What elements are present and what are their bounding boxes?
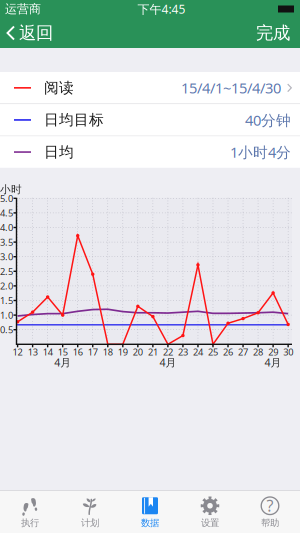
staticText: 2.5 bbox=[0, 265, 13, 277]
staticText: 1.0 bbox=[0, 309, 13, 321]
staticText: 4.5 bbox=[0, 207, 13, 219]
staticText: 17 bbox=[88, 346, 98, 358]
staticText: 日均目标 bbox=[44, 111, 104, 129]
button[interactable]: 返回 bbox=[0, 18, 53, 48]
staticText: 25 bbox=[208, 346, 218, 358]
staticText: 1小时4分 bbox=[230, 142, 291, 162]
button[interactable]: 完成 bbox=[256, 18, 300, 48]
staticText: 4.0 bbox=[0, 221, 13, 234]
button[interactable]: 执行 bbox=[0, 491, 60, 533]
staticText: 下午4:45 bbox=[137, 1, 185, 17]
button[interactable]: 阅读 bbox=[0, 72, 300, 104]
staticText: 0.5 bbox=[0, 323, 13, 336]
staticText: 30 bbox=[283, 346, 293, 358]
button[interactable]: ? bbox=[240, 491, 300, 533]
staticText: 小时 bbox=[0, 183, 22, 196]
staticText: 日均 bbox=[44, 143, 74, 161]
staticText: 40分钟 bbox=[245, 110, 291, 130]
staticText: 完成 bbox=[256, 22, 290, 44]
staticText: 3.0 bbox=[0, 250, 13, 263]
staticText: ? bbox=[266, 495, 273, 516]
staticText: 15/4/1~15/4/30 bbox=[181, 78, 281, 98]
button[interactable]: 数据 bbox=[120, 491, 180, 533]
button[interactable]: 日均 bbox=[0, 136, 300, 168]
staticText: 14 bbox=[43, 346, 53, 358]
staticText: 2.0 bbox=[0, 280, 13, 292]
staticText: 5.0 bbox=[0, 192, 13, 204]
staticText: 3.5 bbox=[0, 236, 13, 248]
staticText: 24 bbox=[193, 346, 203, 358]
staticText: 设置 bbox=[201, 517, 219, 529]
staticText: 返回 bbox=[19, 22, 53, 44]
staticText: 15 bbox=[58, 346, 68, 358]
button[interactable]: 计划 bbox=[60, 491, 120, 533]
staticText: 4月 bbox=[54, 355, 71, 369]
staticText: 阅读 bbox=[44, 79, 74, 97]
staticText: 19 bbox=[118, 346, 128, 358]
staticText: 29 bbox=[268, 346, 278, 358]
staticText: 21 bbox=[148, 346, 158, 358]
staticText: 13 bbox=[28, 346, 38, 358]
staticText: 18 bbox=[103, 346, 113, 358]
staticText: 26 bbox=[223, 346, 233, 358]
staticText: 4月 bbox=[265, 355, 282, 369]
staticText: 执行 bbox=[21, 517, 39, 529]
staticText: 帮助 bbox=[261, 517, 279, 529]
staticText: 22 bbox=[163, 346, 173, 358]
button[interactable]: 设置 bbox=[180, 491, 240, 533]
staticText: 1.5 bbox=[0, 294, 13, 307]
staticText: 计划 bbox=[81, 517, 99, 529]
staticText: 12 bbox=[13, 346, 23, 358]
staticText: 23 bbox=[178, 346, 188, 358]
staticText: 4月 bbox=[159, 355, 176, 369]
staticText: 运营商 bbox=[5, 2, 45, 16]
staticText: 16 bbox=[73, 346, 83, 358]
staticText: 27 bbox=[238, 346, 248, 358]
button[interactable]: 日均目标 bbox=[0, 104, 300, 136]
staticText: 20 bbox=[133, 346, 143, 358]
staticText: 数据 bbox=[141, 517, 159, 529]
staticText: 28 bbox=[253, 346, 263, 358]
